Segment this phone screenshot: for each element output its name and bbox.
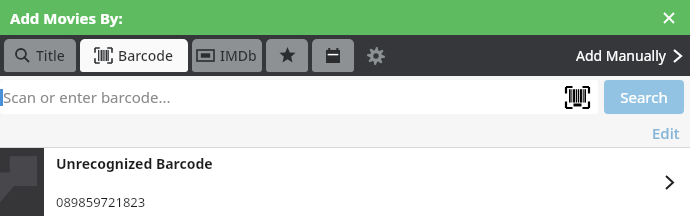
button[interactable]: Add Manually xyxy=(576,46,682,65)
button[interactable]: Title xyxy=(4,39,76,72)
button[interactable]: Settings xyxy=(354,35,398,76)
staticText: Add Movies By: xyxy=(10,8,123,28)
button[interactable]: Calendar xyxy=(312,39,354,72)
button[interactable]: IMDb xyxy=(192,39,262,72)
staticText: Unrecognized Barcode xyxy=(56,154,213,173)
button[interactable]: Edit xyxy=(640,123,690,143)
button[interactable]: Unrecognized Barcode xyxy=(0,148,690,216)
staticText: Scan or enter barcode... xyxy=(3,87,171,107)
staticText: Barcode xyxy=(118,46,173,65)
staticText: 089859721823 xyxy=(56,193,146,211)
button[interactable]: Scan or enter barcode... xyxy=(0,80,598,114)
button[interactable]: Search xyxy=(604,80,684,114)
staticText: IMDb xyxy=(220,46,257,65)
staticText: Title xyxy=(36,46,65,65)
button[interactable]: Favorites xyxy=(266,39,308,72)
button[interactable]: Barcode xyxy=(80,39,188,72)
staticText: Add Manually xyxy=(576,46,666,65)
button[interactable]: Close xyxy=(654,3,684,33)
staticText: Edit xyxy=(652,123,680,143)
button[interactable]: Scan barcode xyxy=(564,85,590,109)
staticText: Search xyxy=(620,87,668,107)
